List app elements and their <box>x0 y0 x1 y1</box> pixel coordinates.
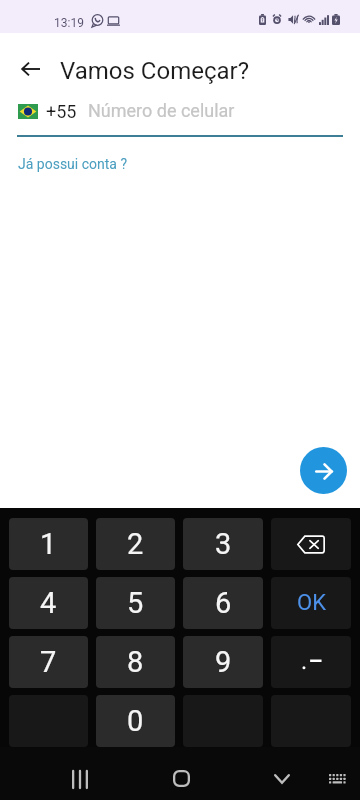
staticText: 6 <box>215 586 232 620</box>
button[interactable]: 9 <box>183 636 263 688</box>
button[interactable]: Voltar <box>19 57 43 81</box>
staticText: 7 <box>40 645 57 679</box>
button[interactable]: 4 <box>9 577 88 629</box>
staticText: 1 <box>40 527 57 561</box>
button[interactable]: Apagar <box>271 518 351 570</box>
button[interactable]: 2 <box>96 518 175 570</box>
staticText: OK <box>297 590 326 616</box>
staticText: 3 <box>215 527 232 561</box>
button[interactable]: Ponto e traço <box>271 636 351 688</box>
staticText: 4 <box>40 586 57 620</box>
button[interactable]: 8 <box>96 636 175 688</box>
button[interactable]: 0 <box>96 695 175 747</box>
button[interactable]: Recentes <box>52 756 108 800</box>
staticText: 0 <box>127 704 144 738</box>
button[interactable]: Trocar teclado <box>316 756 360 800</box>
staticText: +55 <box>46 101 77 122</box>
button[interactable]: 3 <box>183 518 263 570</box>
staticText: 13:19 <box>54 16 84 30</box>
staticText: Número de celular <box>88 100 235 121</box>
button[interactable]: Fechar teclado <box>254 756 310 800</box>
button[interactable]: Já possui conta ? <box>18 156 128 172</box>
staticText: 2 <box>127 527 144 561</box>
button[interactable]: 6 <box>183 577 263 629</box>
staticText: 5 <box>127 586 144 620</box>
button[interactable]: 7 <box>9 636 88 688</box>
staticText: Vamos Começar? <box>60 57 250 85</box>
staticText: 9 <box>215 645 232 679</box>
staticText: 8 <box>127 645 144 679</box>
button[interactable]: OK <box>271 577 351 629</box>
button[interactable]: Continuar <box>300 447 347 494</box>
button[interactable]: 5 <box>96 577 175 629</box>
button[interactable]: Início <box>153 755 209 800</box>
button[interactable]: 1 <box>9 518 88 570</box>
